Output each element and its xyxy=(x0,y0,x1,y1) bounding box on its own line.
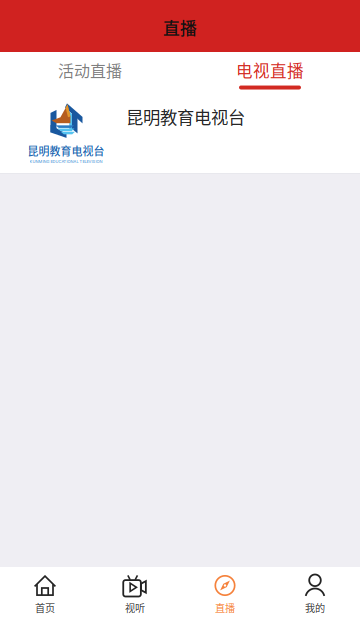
button[interactable]: 首页 xyxy=(0,567,90,620)
staticText: 直播 xyxy=(163,15,197,40)
staticText: KUNMING EDUCATIONAL TELEVISION xyxy=(29,159,102,164)
staticText: 首页 xyxy=(35,600,55,615)
staticText: 直播 xyxy=(215,600,235,615)
button[interactable]: 电视直播 xyxy=(180,52,360,91)
button[interactable]: 活动直播 xyxy=(0,52,180,91)
staticText: 我的 xyxy=(305,600,325,615)
button[interactable]: 视听 xyxy=(90,567,180,620)
button[interactable]: 我的 xyxy=(270,567,360,620)
staticText: 电视直播 xyxy=(236,58,304,82)
button[interactable]: 直播 xyxy=(180,567,270,620)
button[interactable]: 昆明教育电视台 xyxy=(0,91,360,173)
staticText: 昆明教育电视台 xyxy=(27,143,104,159)
staticText: 活动直播 xyxy=(58,58,122,82)
staticText: 昆明教育电视台 xyxy=(126,104,245,129)
staticText: 视听 xyxy=(125,600,145,615)
